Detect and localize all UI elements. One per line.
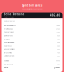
staticText: 9.94 xyxy=(57,63,60,65)
staticText: 6.50 xyxy=(57,35,60,37)
staticText: Subtotal xyxy=(4,60,9,62)
staticText: 5.50 xyxy=(57,55,60,57)
staticText: Service 10% xyxy=(4,63,13,65)
staticText: Items ordered xyxy=(4,20,15,22)
staticText: 9.00 xyxy=(57,48,60,50)
staticText: House red wine xyxy=(4,48,15,50)
staticText: 7.50 xyxy=(57,52,60,54)
staticText: Margherita pizza xyxy=(4,25,16,26)
staticText: Bruschetta xyxy=(4,52,12,54)
staticText: Caesar salad xyxy=(4,31,14,33)
staticText: Lemon sorbet xyxy=(4,55,14,57)
staticText: Table 12 · 18 Mar xyxy=(3,16,14,18)
staticText: $109.34 xyxy=(54,67,60,68)
staticText: 18.00 xyxy=(56,25,60,26)
staticText: 9.00 xyxy=(57,38,60,40)
staticText: $86.40 xyxy=(49,14,60,17)
staticText: Split bill sales xyxy=(22,4,42,7)
staticText: 99.40 xyxy=(56,60,60,62)
staticText: Garlic bread xyxy=(4,35,13,37)
staticText: Total xyxy=(4,67,8,68)
staticText: Espresso xyxy=(4,45,12,47)
staticText: 12.00 xyxy=(56,31,60,33)
staticText: Sparkling water xyxy=(4,42,15,43)
staticText: Truffle pasta xyxy=(4,28,13,30)
staticText: Choose the items you ordered xyxy=(21,8,42,10)
staticText: Tiramisu xyxy=(4,38,10,40)
staticText: Bella Trattoria xyxy=(3,12,24,16)
